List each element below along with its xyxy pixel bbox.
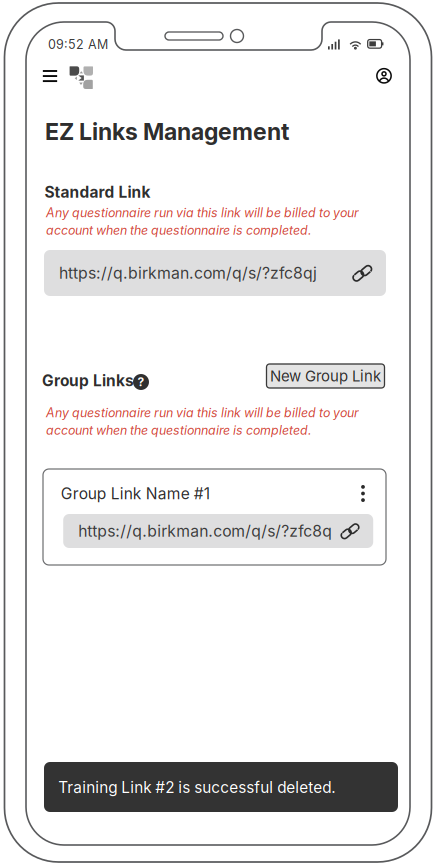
staticText: Any questionnaire run via this link will…: [46, 205, 359, 220]
staticText: New Group Link: [270, 367, 381, 385]
staticText: Standard Link: [44, 183, 150, 201]
staticText: account when the questionnaire is comple…: [46, 423, 312, 438]
staticText: Group Link Name #1: [61, 484, 210, 503]
button[interactable]: https://q.birkman.com/q/s/?zfc8q: [63, 514, 373, 548]
button[interactable]: Menu: [37, 64, 63, 88]
button[interactable]: Account: [371, 64, 397, 88]
button[interactable]: More options: [352, 480, 374, 506]
staticText: Group Links: [42, 371, 134, 390]
staticText: 09:52 AM: [48, 37, 108, 52]
staticText: account when the questionnaire is comple…: [46, 223, 312, 238]
staticText: Training Link #2 is successful deleted.: [58, 778, 335, 797]
button[interactable]: https://q.birkman.com/q/s/?zfc8qj: [44, 250, 386, 296]
staticText: https://q.birkman.com/q/s/?zfc8qj: [59, 263, 317, 282]
staticText: Any questionnaire run via this link will…: [46, 405, 359, 420]
staticText: EZ Links Management: [45, 117, 289, 145]
button[interactable]: New Group Link: [266, 364, 384, 388]
staticText: ?: [137, 375, 144, 389]
staticText: https://q.birkman.com/q/s/?zfc8q: [78, 521, 332, 540]
